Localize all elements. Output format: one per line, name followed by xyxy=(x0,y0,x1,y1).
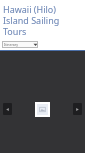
button[interactable]: Tour photo thumbnail xyxy=(35,102,50,117)
staticText: Hawaii (Hilo) Island Sailing Tours xyxy=(3,3,81,37)
button[interactable]: Previous image xyxy=(3,103,12,115)
button[interactable]: Next image xyxy=(73,103,82,115)
staticText: Itinerary xyxy=(4,42,33,47)
button[interactable]: Itinerary xyxy=(2,41,38,48)
